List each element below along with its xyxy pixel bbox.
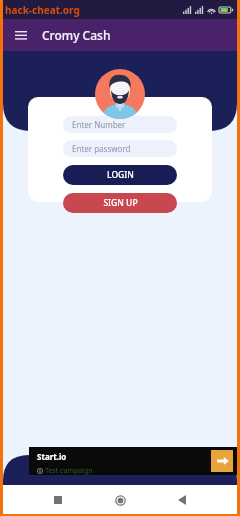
staticText: Enter password	[72, 143, 131, 154]
staticText: Test campaign	[45, 466, 93, 475]
button[interactable]: SIGN UP	[63, 193, 177, 213]
button[interactable]: Enter password	[63, 140, 177, 157]
button[interactable]: LOGIN	[63, 165, 177, 185]
staticText: Start.io	[37, 451, 67, 462]
button[interactable]: Open ad	[211, 450, 233, 472]
button[interactable]: Home	[108, 488, 132, 512]
staticText: LOGIN	[107, 169, 134, 181]
staticText: SIGN UP	[103, 197, 138, 209]
button[interactable]: Enter Number	[63, 116, 177, 133]
button[interactable]: Back	[170, 488, 194, 512]
staticText: Enter Number	[72, 119, 126, 130]
button[interactable]: Start.io	[29, 447, 237, 475]
button[interactable]: Open navigation menu	[12, 26, 30, 44]
staticText: hack-cheat.org	[5, 3, 80, 17]
button[interactable]: Profile picture	[95, 69, 145, 119]
button[interactable]: Recent apps	[46, 488, 70, 512]
staticText: Cromy Cash	[42, 27, 111, 43]
